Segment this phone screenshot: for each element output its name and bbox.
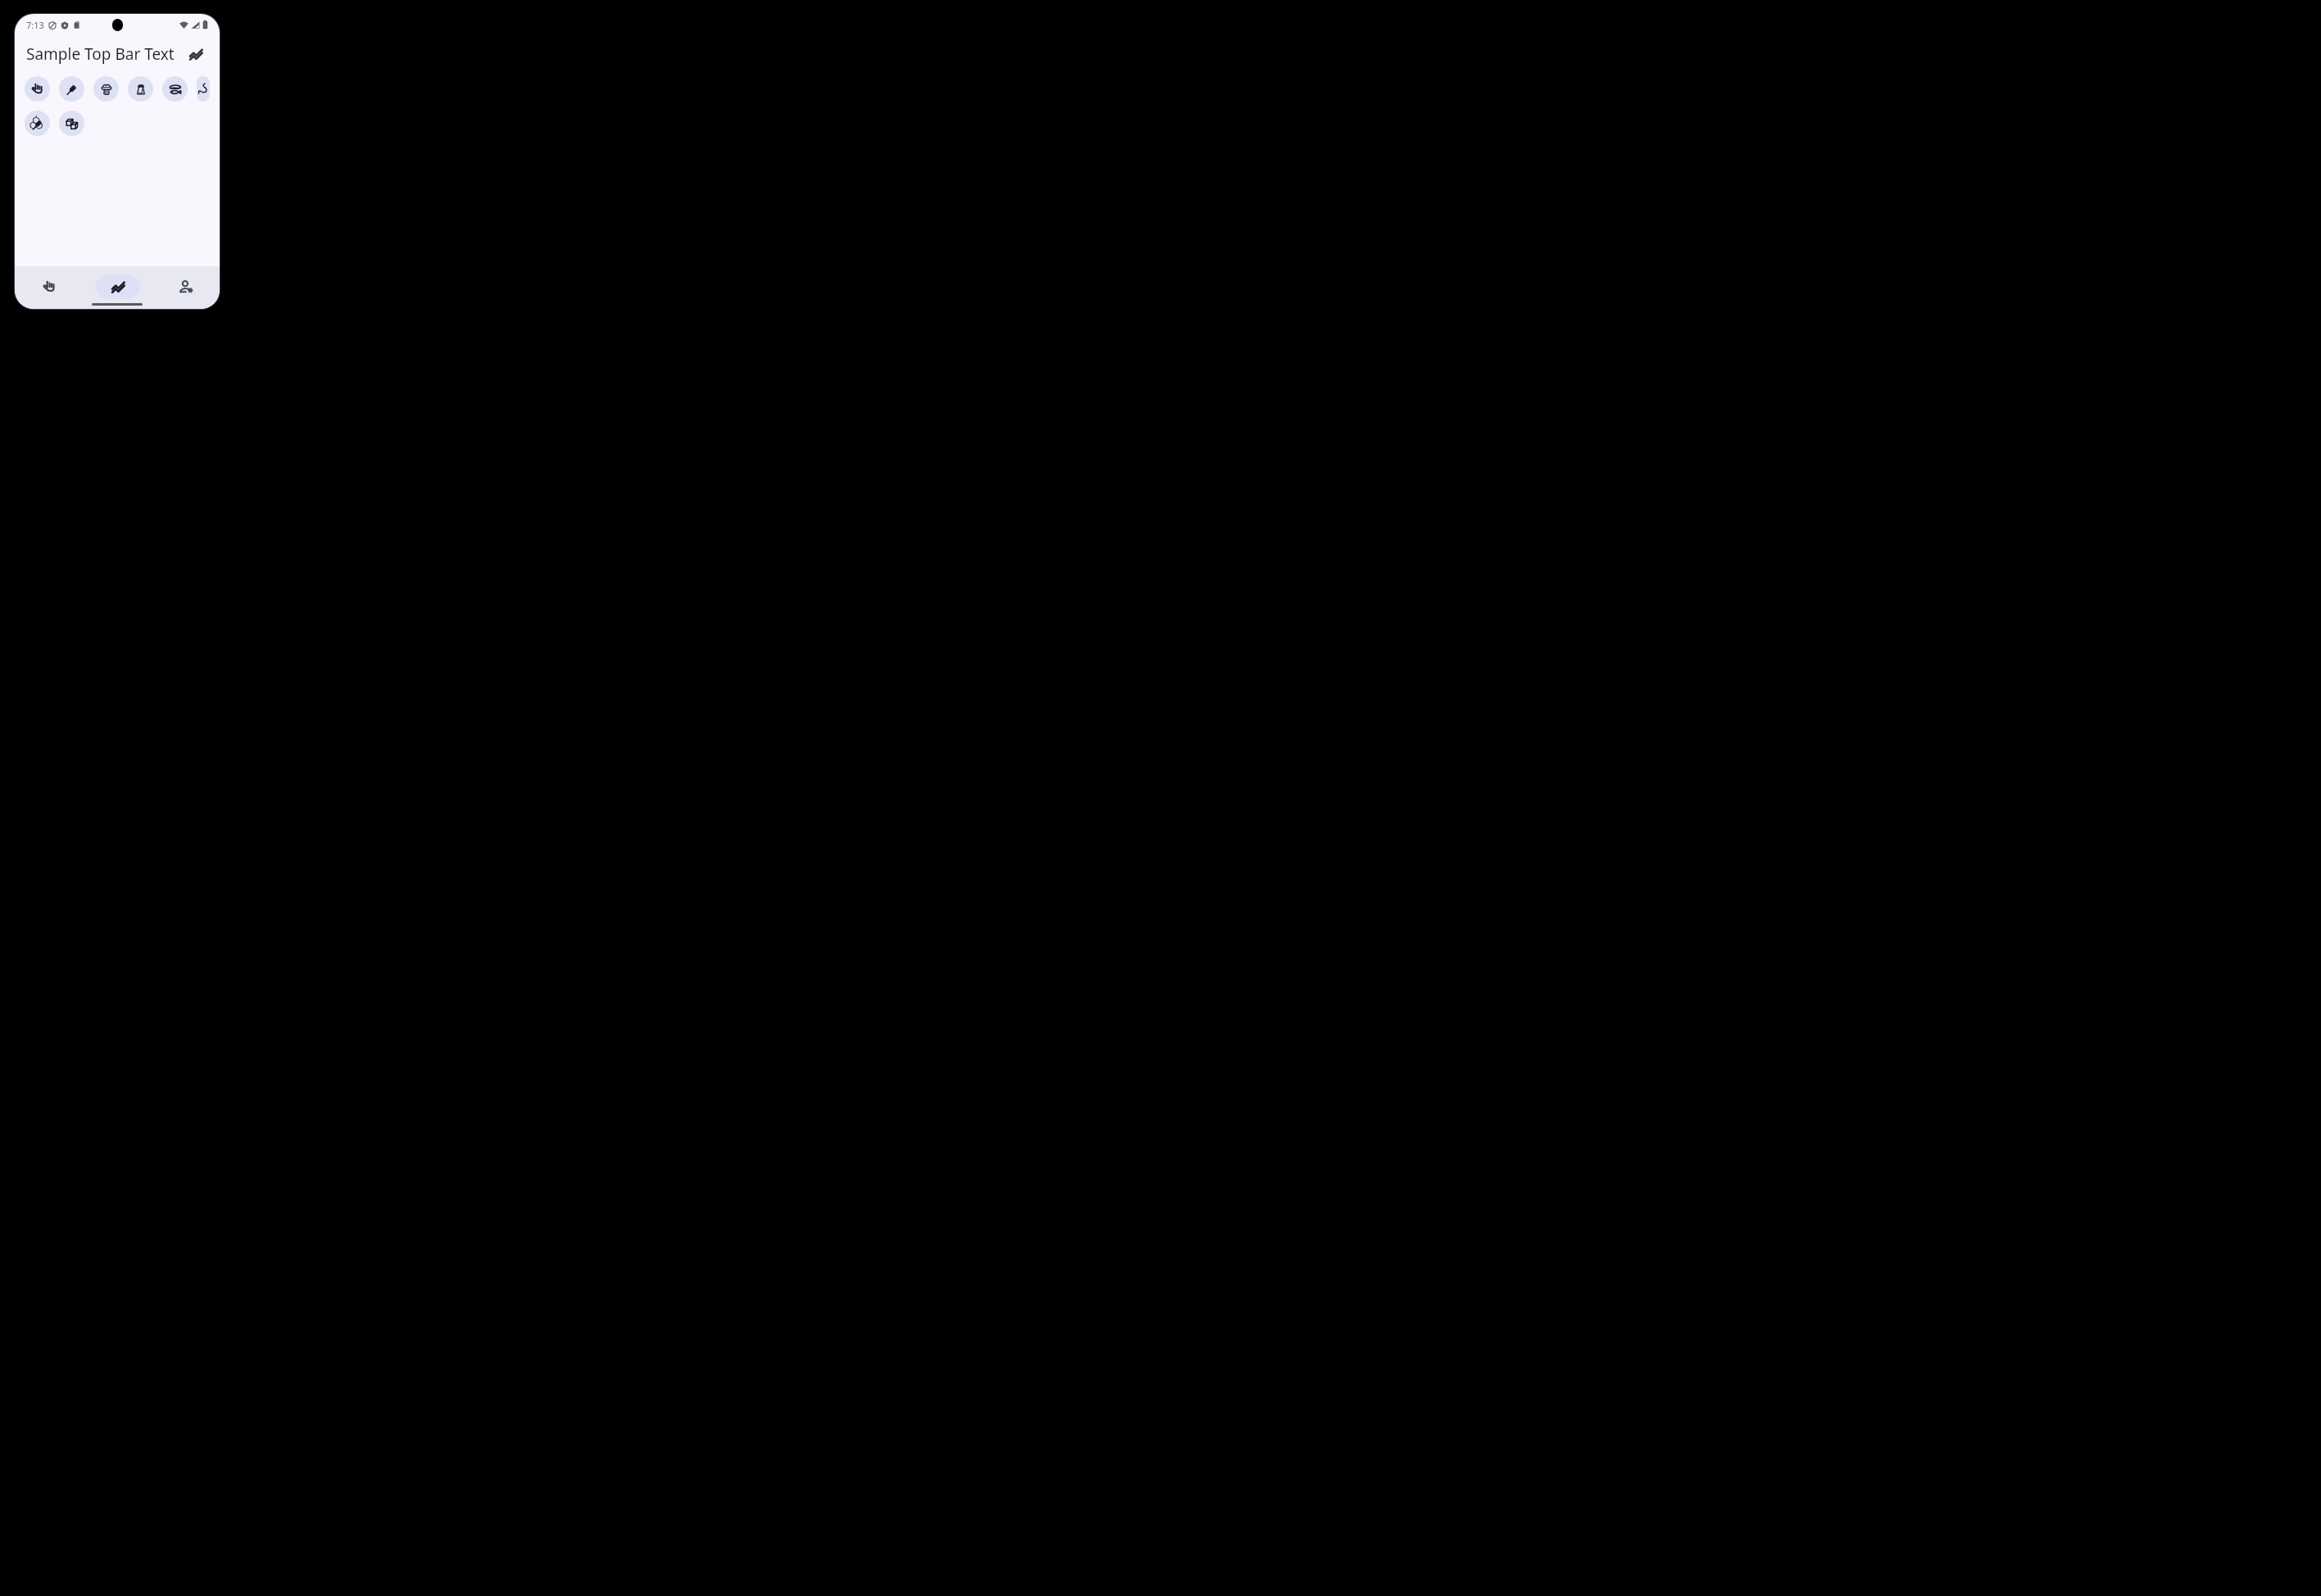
staticText: 7:13 [26, 19, 44, 31]
button[interactable]: Digestion [197, 76, 210, 102]
button[interactable]: Salt [128, 76, 153, 102]
button[interactable]: Seafood [162, 76, 188, 102]
button[interactable]: Sugar [59, 111, 84, 136]
button[interactable]: Hand [25, 76, 50, 102]
button[interactable]: Profile [152, 266, 220, 301]
button[interactable]: Grains [59, 76, 84, 102]
button[interactable]: Vegetables [93, 76, 119, 102]
button[interactable]: Trends [182, 40, 210, 68]
button[interactable]: Gluten [25, 111, 50, 136]
button[interactable]: Trends [84, 266, 152, 301]
button[interactable]: Log [15, 266, 84, 301]
staticText: Sample Top Bar Text [26, 43, 182, 65]
